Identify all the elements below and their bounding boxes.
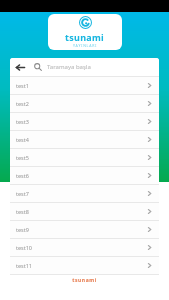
staticText: test1 — [16, 82, 146, 89]
staticText: test4 — [16, 136, 146, 143]
button[interactable]: test10 — [10, 239, 159, 256]
button[interactable]: test3 — [10, 113, 159, 130]
button[interactable]: test2 — [10, 95, 159, 112]
staticText: Taramaya başla — [47, 63, 91, 71]
button[interactable]: Back — [10, 58, 159, 76]
staticText: test10 — [16, 244, 146, 251]
other: Search — [34, 63, 42, 71]
button[interactable]: test7 — [10, 185, 159, 202]
button[interactable]: test8 — [10, 203, 159, 220]
button[interactable]: test11 — [10, 257, 159, 274]
staticText: YAYINLARI — [73, 43, 98, 48]
staticText: test3 — [16, 118, 146, 125]
button[interactable]: test9 — [10, 221, 159, 238]
button[interactable]: tsunami — [48, 14, 122, 50]
staticText: tsunami — [65, 31, 105, 43]
staticText: test6 — [16, 172, 146, 179]
button[interactable]: test1 — [10, 77, 159, 94]
staticText: test11 — [16, 262, 146, 269]
staticText: test8 — [16, 208, 146, 215]
staticText: test7 — [16, 190, 146, 197]
button[interactable]: test5 — [10, 149, 159, 166]
staticText: test2 — [16, 100, 146, 107]
staticText: tsunami — [72, 277, 97, 284]
button[interactable]: test6 — [10, 167, 159, 184]
staticText: test5 — [16, 154, 146, 161]
button[interactable]: test4 — [10, 131, 159, 148]
other: Back — [15, 62, 26, 73]
staticText: test9 — [16, 226, 146, 233]
